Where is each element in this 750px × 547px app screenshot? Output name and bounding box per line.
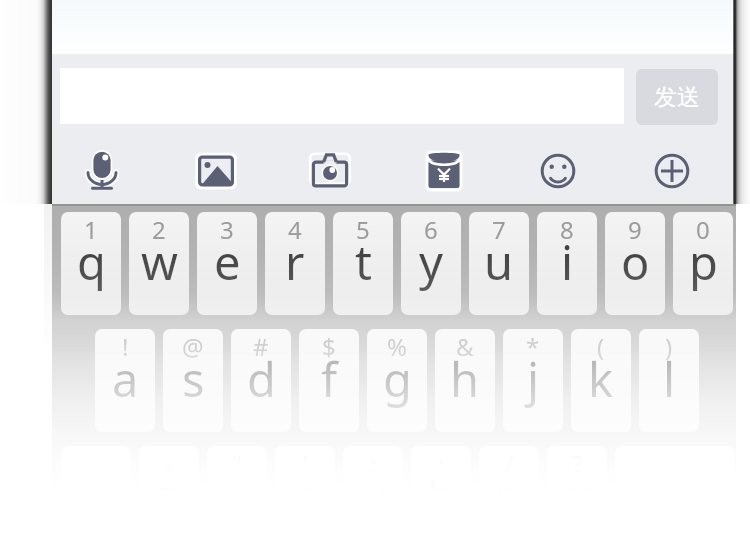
button[interactable]: (	[571, 329, 631, 432]
staticText: 4	[288, 213, 302, 246]
staticText: i	[561, 230, 574, 294]
staticText: r	[285, 230, 305, 294]
staticText: w	[141, 230, 178, 294]
staticText: 8	[560, 213, 574, 246]
staticText: 9	[628, 213, 642, 246]
staticText: 3	[220, 213, 234, 246]
staticText: $	[322, 330, 336, 363]
staticText: !	[122, 330, 129, 363]
button[interactable]: Red packet	[414, 141, 474, 201]
button[interactable]: Camera	[300, 141, 360, 201]
button[interactable]: 0	[673, 212, 733, 315]
staticText: @	[182, 330, 204, 363]
button[interactable]: Photo	[186, 141, 246, 201]
staticText: 1	[84, 213, 98, 246]
staticText: *	[526, 330, 540, 363]
button[interactable]: 8	[537, 212, 597, 315]
button[interactable]: 1	[61, 212, 121, 315]
staticText: y	[419, 230, 443, 294]
staticText: h	[450, 347, 480, 411]
button[interactable]: @	[163, 329, 223, 432]
button[interactable]: 3	[197, 212, 257, 315]
button[interactable]: %	[367, 329, 427, 432]
staticText: 6	[424, 213, 438, 246]
button[interactable]: 7	[469, 212, 529, 315]
staticText: d	[247, 347, 276, 411]
button[interactable]: *	[503, 329, 563, 432]
button[interactable]: $	[299, 329, 359, 432]
button[interactable]: #	[231, 329, 291, 432]
button[interactable]: 5	[333, 212, 393, 315]
staticText: u	[484, 230, 514, 294]
staticText: )	[665, 330, 673, 363]
button[interactable]: 6	[401, 212, 461, 315]
staticText: k	[588, 347, 614, 411]
button[interactable]: More	[642, 141, 702, 201]
staticText: 5	[356, 213, 370, 246]
staticText: q	[77, 230, 106, 294]
button[interactable]: &	[435, 329, 495, 432]
button[interactable]: !	[95, 329, 155, 432]
staticText: s	[182, 347, 205, 411]
button[interactable]: 9	[605, 212, 665, 315]
staticText: 7	[492, 213, 506, 246]
button[interactable]: Voice message	[72, 141, 132, 201]
staticText: g	[383, 347, 412, 411]
button[interactable]: 发送	[636, 69, 718, 125]
staticText: l	[663, 347, 676, 411]
button[interactable]: 4	[265, 212, 325, 315]
staticText: %	[387, 330, 407, 363]
staticText: e	[214, 230, 241, 294]
staticText: a	[112, 347, 139, 411]
staticText: j	[527, 347, 540, 411]
staticText: f	[321, 347, 338, 411]
button[interactable]: )	[639, 329, 699, 432]
staticText: &	[456, 330, 474, 363]
staticText: 发送	[654, 83, 700, 112]
staticText: 2	[152, 213, 166, 246]
staticText: (	[597, 330, 605, 363]
staticText: #	[253, 330, 269, 363]
button[interactable]: Emoji	[528, 141, 588, 201]
staticText: t	[355, 230, 372, 294]
staticText: p	[689, 230, 718, 294]
button[interactable]: 2	[129, 212, 189, 315]
staticText: o	[621, 230, 650, 294]
staticText: 0	[696, 213, 710, 246]
